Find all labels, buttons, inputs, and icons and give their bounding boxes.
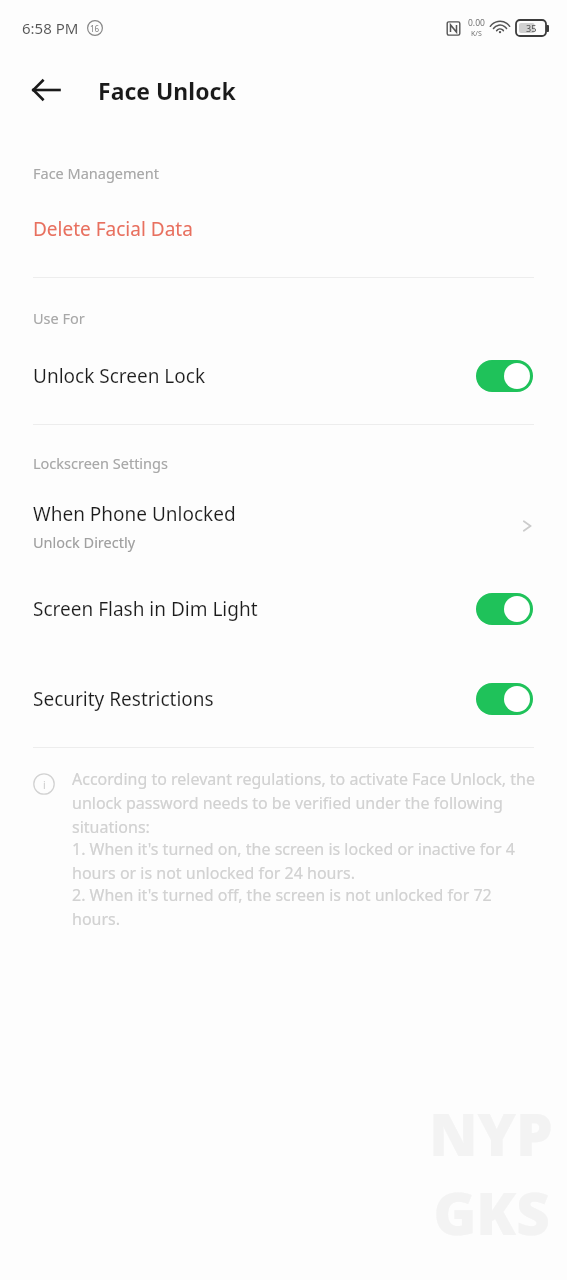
staticText: 35 [526, 22, 537, 34]
staticText: Lockscreen Settings [33, 453, 168, 473]
staticText: GKS [433, 1173, 550, 1252]
staticText: Unlock Screen Lock [33, 363, 476, 389]
staticText: According to relevant regulations, to ac… [72, 768, 537, 838]
staticText: Face Management [33, 163, 159, 183]
staticText: Delete Facial Data [33, 216, 193, 242]
staticText: Unlock Directly [33, 532, 136, 552]
staticText: Use For [33, 308, 85, 328]
button[interactable]: Back [22, 66, 70, 114]
staticText: 6:58 PM [22, 18, 79, 38]
button[interactable]: Delete Facial Data [0, 203, 567, 255]
other: Screen Flash in Dim Light [476, 593, 533, 625]
staticText: When Phone Unlocked [33, 501, 236, 527]
staticText: NYP [429, 1094, 553, 1173]
button[interactable]: Unlock Screen Lock [0, 350, 567, 402]
staticText: 2. When it's turned off, the screen is n… [72, 884, 537, 930]
other: Security Restrictions [476, 683, 533, 715]
staticText: Face Unlock [98, 75, 236, 106]
staticText: K/S [471, 29, 482, 39]
staticText: Security Restrictions [33, 686, 476, 712]
button[interactable]: Screen Flash in Dim Light [0, 583, 567, 635]
staticText: Screen Flash in Dim Light [33, 596, 476, 622]
button[interactable]: Security Restrictions [0, 673, 567, 725]
staticText: 16 [90, 23, 100, 34]
staticText: i [43, 777, 46, 792]
staticText: 0.00 [468, 17, 485, 29]
other: Unlock Screen Lock [476, 360, 533, 392]
button[interactable]: When Phone Unlocked [0, 493, 567, 559]
staticText: 1. When it's turned on, the screen is lo… [72, 838, 537, 884]
